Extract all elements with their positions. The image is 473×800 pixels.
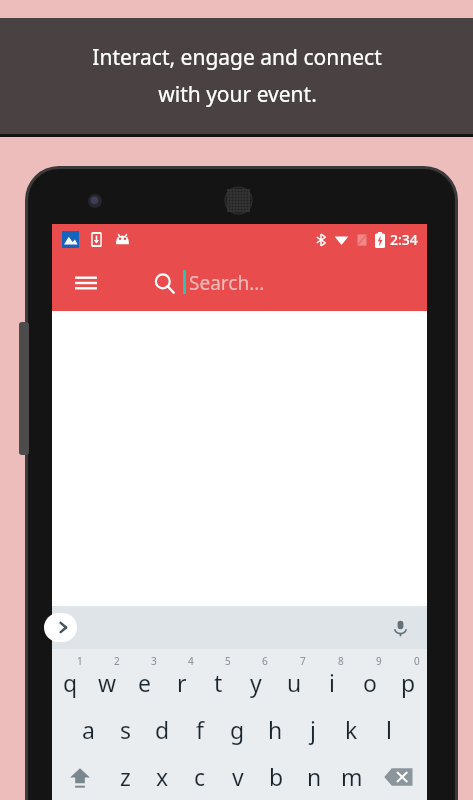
button[interactable]: 7 bbox=[275, 649, 313, 705]
staticText: f bbox=[196, 714, 204, 745]
staticText: 0 bbox=[414, 654, 420, 668]
button[interactable]: Backspace bbox=[371, 753, 427, 800]
staticText: q bbox=[63, 667, 78, 698]
staticText: with your event. bbox=[158, 80, 317, 109]
staticText: m bbox=[341, 761, 363, 792]
staticText: h bbox=[268, 714, 283, 745]
button[interactable]: z bbox=[107, 753, 144, 800]
button[interactable]: x bbox=[144, 753, 181, 800]
staticText: i bbox=[329, 667, 335, 698]
button[interactable]: 3 bbox=[126, 649, 163, 705]
button[interactable]: k bbox=[332, 705, 370, 753]
staticText: 4 bbox=[188, 654, 194, 668]
button[interactable]: n bbox=[295, 753, 333, 800]
button[interactable]: g bbox=[218, 705, 256, 753]
staticText: r bbox=[177, 667, 187, 698]
staticText: t bbox=[214, 667, 223, 698]
button[interactable]: Open navigation menu bbox=[64, 261, 108, 305]
button[interactable]: s bbox=[107, 705, 144, 753]
staticText: b bbox=[269, 761, 284, 792]
staticText: 9 bbox=[376, 654, 382, 668]
staticText: p bbox=[401, 667, 416, 698]
button[interactable]: 6 bbox=[237, 649, 275, 705]
button[interactable]: m bbox=[333, 753, 371, 800]
button[interactable]: v bbox=[219, 753, 257, 800]
staticText: 1 bbox=[77, 654, 83, 668]
button[interactable]: Shift bbox=[52, 753, 107, 800]
staticText: l bbox=[386, 714, 392, 745]
button[interactable]: a bbox=[70, 705, 107, 753]
staticText: k bbox=[345, 714, 358, 745]
button[interactable]: 0 bbox=[389, 649, 427, 705]
staticText: 2:34 bbox=[390, 230, 418, 249]
button[interactable]: Search bbox=[144, 263, 184, 303]
staticText: d bbox=[155, 714, 170, 745]
button[interactable]: Voice input bbox=[385, 613, 415, 643]
staticText: s bbox=[120, 714, 132, 745]
staticText: n bbox=[307, 761, 322, 792]
staticText: g bbox=[230, 714, 245, 745]
staticText: a bbox=[82, 714, 95, 745]
staticText: j bbox=[310, 714, 316, 745]
staticText: u bbox=[287, 667, 302, 698]
staticText: v bbox=[232, 761, 244, 792]
button[interactable]: 8 bbox=[313, 649, 351, 705]
staticText: x bbox=[156, 761, 169, 792]
staticText: z bbox=[120, 761, 131, 792]
staticText: o bbox=[363, 667, 377, 698]
button[interactable]: 2 bbox=[89, 649, 126, 705]
button[interactable]: d bbox=[144, 705, 181, 753]
button[interactable]: j bbox=[294, 705, 332, 753]
staticText: e bbox=[138, 667, 151, 698]
staticText: 5 bbox=[225, 654, 231, 668]
button[interactable]: 5 bbox=[200, 649, 237, 705]
staticText: 8 bbox=[338, 654, 344, 668]
button[interactable]: c bbox=[181, 753, 219, 800]
staticText: 7 bbox=[300, 654, 306, 668]
staticText: Search... bbox=[189, 270, 265, 296]
staticText: 6 bbox=[262, 654, 268, 668]
staticText: 3 bbox=[151, 654, 157, 668]
button[interactable]: f bbox=[181, 705, 218, 753]
button[interactable]: 1 bbox=[52, 649, 89, 705]
button[interactable]: b bbox=[257, 753, 295, 800]
button[interactable]: More suggestions bbox=[44, 613, 77, 642]
staticText: y bbox=[250, 667, 262, 698]
staticText: w bbox=[98, 667, 117, 698]
button[interactable]: l bbox=[370, 705, 408, 753]
staticText: 2 bbox=[114, 654, 120, 668]
staticText: Interact, engage and connect bbox=[92, 43, 382, 72]
button[interactable]: 4 bbox=[163, 649, 200, 705]
button[interactable]: h bbox=[256, 705, 294, 753]
button[interactable]: 9 bbox=[351, 649, 389, 705]
button[interactable]: Search... bbox=[189, 261, 389, 305]
staticText: c bbox=[194, 761, 206, 792]
